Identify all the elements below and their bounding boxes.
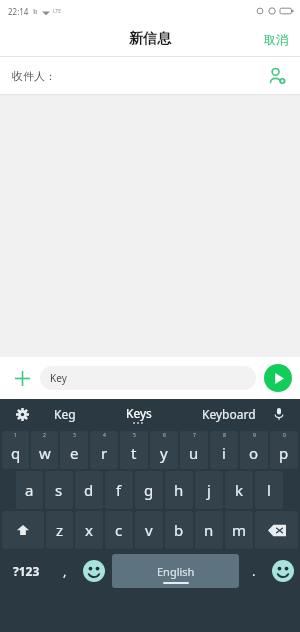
staticText: f (116, 480, 122, 500)
staticText: . (252, 562, 256, 580)
button[interactable]: h (165, 471, 193, 509)
button[interactable]: b (165, 511, 193, 549)
staticText: q (11, 443, 21, 463)
staticText: d (84, 480, 94, 500)
button[interactable]: Voice input (268, 403, 290, 425)
staticText: e (70, 443, 79, 463)
staticText: r (101, 443, 108, 463)
staticText: ?123 (13, 563, 40, 579)
button[interactable]: English (112, 554, 239, 588)
button[interactable]: z (46, 511, 73, 549)
staticText: b (174, 520, 184, 540)
button[interactable]: Add recipient (264, 63, 290, 89)
staticText: z (56, 520, 64, 540)
staticText: x (85, 520, 93, 540)
button[interactable]: Keg (48, 402, 82, 426)
staticText: 收件人： (12, 69, 56, 83)
button[interactable]: m (225, 511, 253, 549)
button[interactable]: 6 (150, 431, 178, 469)
button[interactable]: 3 (60, 431, 88, 469)
button[interactable]: 9 (240, 431, 268, 469)
staticText: Keg (54, 406, 76, 422)
button[interactable]: f (105, 471, 133, 509)
button[interactable]: Keys (120, 403, 158, 426)
staticText: 新信息 (129, 30, 171, 48)
staticText: 1 (14, 432, 17, 439)
button[interactable]: Shift (2, 511, 44, 549)
staticText: h (174, 480, 184, 500)
button[interactable]: v (135, 511, 163, 549)
staticText: 5 (133, 432, 136, 439)
staticText: t (131, 443, 137, 463)
staticText: o (249, 443, 259, 463)
button[interactable]: Emoji picker (266, 551, 299, 591)
staticText: 0 (283, 432, 286, 439)
button[interactable]: Key (40, 366, 256, 390)
button[interactable]: s (45, 471, 73, 509)
staticText: 8 (223, 432, 226, 439)
staticText: 取消 (264, 32, 288, 47)
staticText: 7 (193, 432, 196, 439)
staticText: l (267, 480, 271, 500)
staticText: LTE (53, 8, 62, 15)
staticText: 9 (253, 432, 256, 439)
button[interactable]: 0 (270, 431, 298, 469)
staticText: 3 (73, 432, 76, 439)
button[interactable]: Keyboard (196, 402, 262, 426)
button[interactable]: Add attachment (8, 364, 36, 392)
staticText: i (222, 443, 226, 463)
button[interactable]: Emoji (77, 551, 110, 591)
button[interactable]: n (195, 511, 223, 549)
staticText: c (115, 520, 123, 540)
staticText: k (235, 480, 244, 500)
button[interactable]: j (195, 471, 223, 509)
button[interactable]: 5 (120, 431, 148, 469)
staticText: m (232, 520, 247, 540)
button[interactable]: Send (264, 364, 292, 392)
staticText: w (39, 443, 51, 463)
button[interactable]: , (52, 551, 77, 591)
staticText: Keyboard (202, 406, 256, 422)
staticText: p (279, 443, 289, 463)
button[interactable]: 4 (90, 431, 118, 469)
staticText: , (63, 562, 67, 580)
staticText: 6 (163, 432, 166, 439)
button[interactable]: . (241, 551, 266, 591)
button[interactable]: l (255, 471, 283, 509)
button[interactable]: k (225, 471, 253, 509)
button[interactable]: 2 (31, 431, 58, 469)
button[interactable]: 8 (210, 431, 238, 469)
button[interactable]: ?123 (1, 551, 52, 591)
staticText: g (144, 480, 154, 500)
staticText: 4 (103, 432, 106, 439)
button[interactable]: 1 (2, 431, 29, 469)
staticText: s (55, 480, 63, 500)
button[interactable]: a (16, 471, 43, 509)
staticText: u (189, 443, 199, 463)
button[interactable]: 7 (180, 431, 208, 469)
button[interactable]: c (105, 511, 133, 549)
staticText: English (157, 564, 195, 579)
staticText: n (204, 520, 214, 540)
staticText: 2 (43, 432, 46, 439)
button[interactable]: Settings (10, 402, 34, 426)
button[interactable]: Backspace (255, 511, 298, 549)
staticText: 22:14 (8, 6, 29, 17)
staticText: a (25, 480, 34, 500)
button[interactable]: x (75, 511, 103, 549)
staticText: j (207, 480, 211, 500)
staticText: Key (50, 371, 67, 385)
staticText: y (160, 443, 168, 463)
staticText: v (145, 520, 153, 540)
staticText: Keys (126, 405, 152, 421)
button[interactable]: 取消 (252, 26, 300, 53)
button[interactable]: d (75, 471, 103, 509)
button[interactable]: g (135, 471, 163, 509)
